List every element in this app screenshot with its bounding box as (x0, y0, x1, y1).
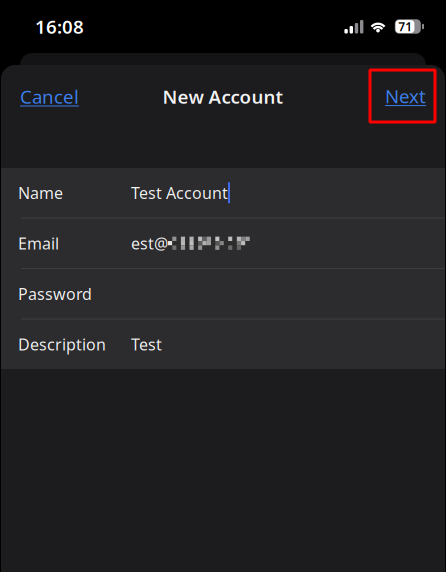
button[interactable]: Next (370, 70, 435, 122)
staticText: Password (18, 283, 92, 304)
button[interactable]: Email (1, 218, 445, 268)
staticText: Next (385, 84, 426, 108)
button[interactable]: Description (1, 319, 445, 369)
staticText: 16:08 (35, 14, 84, 39)
staticText: New Account (162, 84, 283, 109)
staticText: Description (18, 334, 106, 355)
staticText: Email (18, 233, 59, 254)
button[interactable]: Password (1, 269, 445, 318)
staticText: est@ (131, 233, 168, 254)
staticText: Test (131, 334, 162, 355)
button[interactable]: Cancel (1, 65, 97, 123)
button[interactable]: Name (1, 168, 445, 217)
staticText: Cancel (20, 84, 79, 109)
staticText: Name (18, 182, 63, 203)
staticText: Test Account (131, 182, 228, 203)
staticText: 71 (398, 18, 412, 34)
